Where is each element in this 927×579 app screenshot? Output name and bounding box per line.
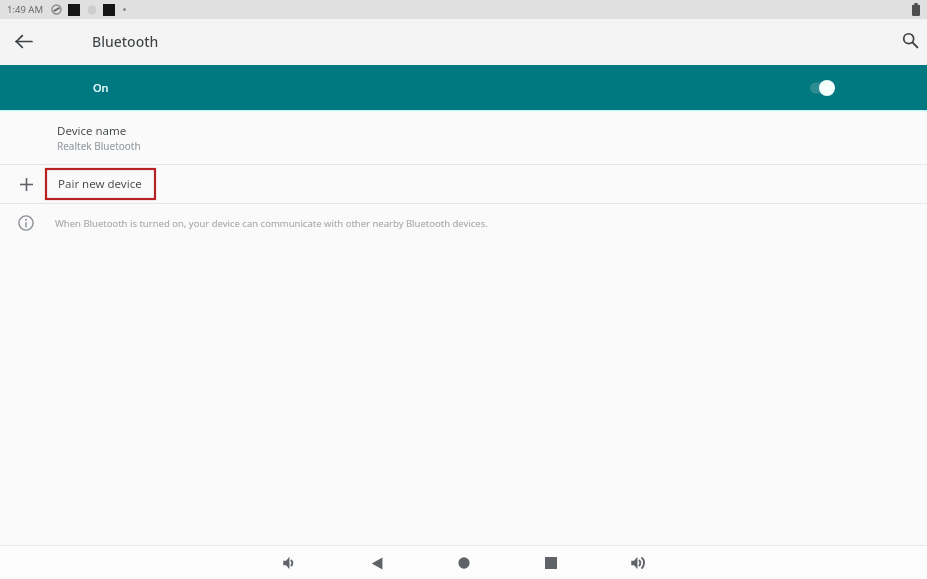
staticText: On [93,80,109,95]
button[interactable]: Recent apps [535,547,567,579]
button[interactable]: Pair new device [0,165,927,203]
button[interactable]: On [0,65,927,110]
button[interactable]: Back [7,26,39,58]
button[interactable]: Search [894,26,926,58]
staticText: When Bluetooth is turned on, your device… [55,217,488,230]
button[interactable]: Device name [0,113,927,164]
staticText: Pair new device [58,176,142,192]
staticText: Device name [57,123,127,139]
button[interactable]: Volume up [622,547,654,579]
button[interactable]: Volume down [274,547,306,579]
button[interactable]: Back [361,547,393,579]
staticText: Bluetooth [92,32,159,51]
staticText: Realtek Bluetooth [57,139,141,153]
staticText: 1:49 AM [7,3,44,16]
button[interactable]: Home [448,547,480,579]
